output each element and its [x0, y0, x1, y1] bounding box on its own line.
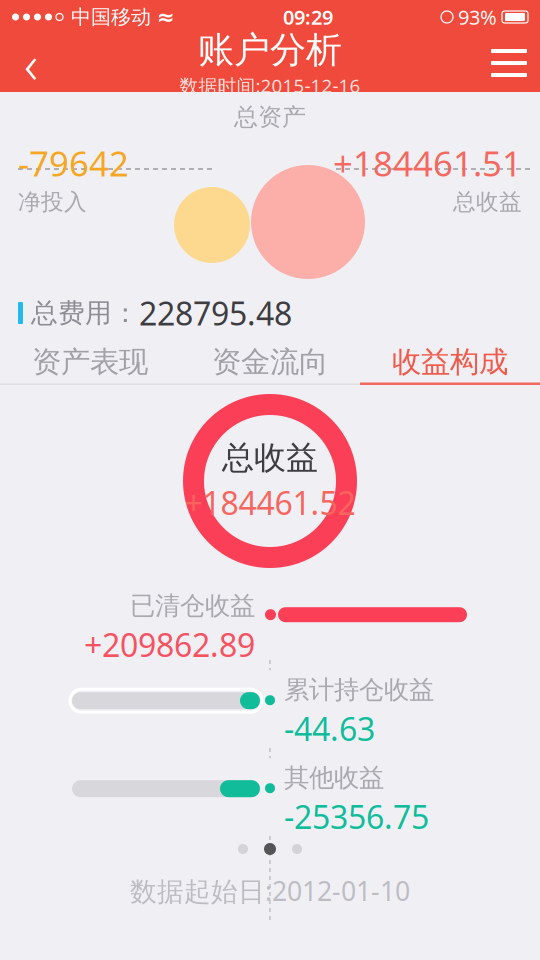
button[interactable]: 收益构成 [360, 339, 540, 385]
staticText: 总收益 [453, 188, 522, 216]
staticText: 总费用： [31, 297, 139, 329]
staticText: ≈ [157, 5, 175, 29]
staticText: 资产表现 [32, 344, 148, 380]
staticText: +184461.51 [333, 140, 522, 186]
staticText: ‹ [24, 28, 38, 98]
staticText: +184461.52 [184, 481, 355, 524]
button[interactable]: 资产表现 [0, 339, 180, 385]
staticText: 09:29 [283, 4, 333, 30]
staticText: 中国移动 [71, 5, 151, 29]
staticText: 93% [458, 4, 497, 30]
staticText: 数据起始日:2012-01-10 [130, 873, 410, 908]
staticText: 净投入 [18, 188, 87, 216]
staticText: 总资产 [234, 102, 306, 132]
staticText: 其他收益 [284, 762, 384, 793]
staticText: -79642 [18, 140, 129, 186]
staticText: 总收益 [222, 438, 318, 477]
staticText: +209862.89 [84, 623, 255, 666]
staticText: 资金流向 [212, 344, 328, 380]
staticText: 已清仓收益 [130, 590, 255, 621]
staticText: -44.63 [284, 707, 375, 750]
staticText: 228795.48 [139, 292, 292, 334]
staticText: 账户分析 [198, 28, 342, 72]
button[interactable]: 资金流向 [180, 339, 360, 385]
button[interactable]: Menu [478, 34, 540, 92]
staticText: 累计持仓收益 [284, 674, 434, 705]
staticText: -25356.75 [284, 795, 429, 838]
staticText: 数据时间:2015-12-16 [179, 73, 360, 98]
staticText: 收益构成 [392, 344, 508, 380]
button[interactable]: Back [0, 34, 62, 92]
